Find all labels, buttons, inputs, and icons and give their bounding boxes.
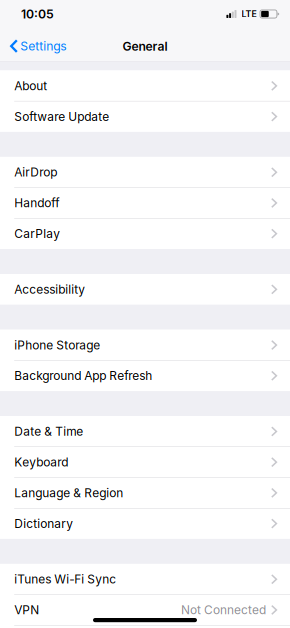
staticText: Background App Refresh	[14, 368, 152, 383]
staticText: Settings	[20, 39, 66, 53]
staticText: Handoff	[14, 196, 59, 210]
staticText: Accessibility	[14, 282, 85, 296]
button[interactable]: Handoff	[0, 188, 290, 218]
button[interactable]: CarPlay	[0, 218, 290, 249]
staticText: AirDrop	[14, 165, 57, 179]
staticText: Software Update	[14, 109, 109, 124]
button[interactable]: VPN	[0, 595, 290, 625]
staticText: Date & Time	[14, 424, 83, 439]
button[interactable]: Keyboard	[0, 447, 290, 477]
button[interactable]: Dictionary	[0, 508, 290, 539]
staticText: Keyboard	[14, 455, 68, 469]
button[interactable]: Software Update	[0, 101, 290, 132]
button[interactable]: Background App Refresh	[0, 360, 290, 391]
staticText: General	[122, 39, 167, 54]
button[interactable]: Settings	[0, 31, 72, 57]
staticText: CarPlay	[14, 226, 60, 241]
staticText: 10:05	[21, 7, 54, 21]
button[interactable]: Accessibility	[0, 274, 290, 305]
staticText: Dictionary	[14, 516, 73, 531]
button[interactable]: iPhone Storage	[0, 330, 290, 360]
staticText: LTE	[241, 9, 256, 19]
staticText: iPhone Storage	[14, 338, 100, 352]
staticText: VPN	[14, 603, 39, 617]
button[interactable]: AirDrop	[0, 157, 290, 188]
button[interactable]: Profiles & Device Management	[0, 625, 290, 628]
button[interactable]: Language & Region	[0, 477, 290, 508]
staticText: About	[14, 79, 47, 93]
staticText: Not Connected	[181, 603, 266, 617]
button[interactable]: iTunes Wi-Fi Sync	[0, 564, 290, 595]
button[interactable]: About	[0, 70, 290, 101]
button[interactable]: Date & Time	[0, 416, 290, 447]
staticText: iTunes Wi-Fi Sync	[14, 572, 116, 586]
staticText: Language & Region	[14, 486, 123, 500]
